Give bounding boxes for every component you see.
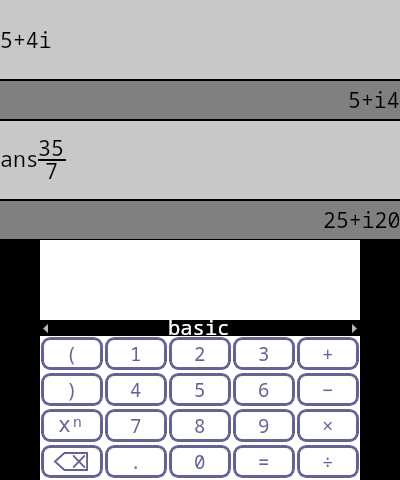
other: Previous keypad: [43, 324, 48, 333]
button[interactable]: ans: [0, 121, 400, 199]
staticText: ÷: [322, 449, 334, 475]
button[interactable]: (: [41, 337, 103, 370]
button[interactable]: 3: [233, 337, 295, 370]
staticText: ): [66, 377, 78, 403]
staticText: ×: [322, 413, 334, 439]
staticText: −: [322, 377, 334, 403]
button[interactable]: 25+i20: [0, 201, 400, 239]
button[interactable]: x: [41, 409, 103, 442]
button[interactable]: .: [105, 445, 167, 478]
staticText: =: [258, 449, 270, 475]
staticText: 8: [194, 413, 206, 439]
staticText: (: [66, 341, 78, 367]
staticText: 5+i4: [348, 85, 400, 114]
button[interactable]: 9: [233, 409, 295, 442]
staticText: 3: [258, 341, 270, 367]
staticText: 0: [194, 449, 206, 475]
button[interactable]: 8: [169, 409, 231, 442]
staticText: 7: [45, 156, 58, 185]
staticText: 6: [258, 377, 270, 403]
button[interactable]: 5+i4: [0, 81, 400, 119]
staticText: 1: [130, 341, 142, 367]
staticText: 9: [258, 413, 270, 439]
button[interactable]: ÷: [297, 445, 359, 478]
staticText: 5: [194, 377, 206, 403]
button[interactable]: 7: [105, 409, 167, 442]
button[interactable]: Backspace: [41, 445, 103, 478]
other: Backspace: [54, 452, 88, 471]
staticText: 35: [38, 133, 64, 162]
staticText: 2: [194, 341, 206, 367]
staticText: n: [73, 411, 82, 431]
staticText: 4: [130, 377, 142, 403]
button[interactable]: 1: [105, 337, 167, 370]
button[interactable]: 2: [169, 337, 231, 370]
button[interactable]: 5+4i: [0, 0, 400, 79]
button[interactable]: 6: [233, 373, 295, 406]
staticText: x: [58, 409, 71, 435]
button[interactable]: 4: [105, 373, 167, 406]
staticText: 5+4i: [0, 25, 52, 54]
staticText: ans: [0, 144, 39, 173]
button[interactable]: 5: [169, 373, 231, 406]
button[interactable]: −: [297, 373, 359, 406]
button[interactable]: =: [233, 445, 295, 478]
staticText: +: [322, 341, 334, 367]
staticText: 7: [130, 413, 142, 439]
staticText: 25+i20: [323, 205, 400, 234]
button[interactable]: +: [297, 337, 359, 370]
other: Next keypad: [352, 324, 357, 333]
button[interactable]: ×: [297, 409, 359, 442]
button[interactable]: ): [41, 373, 103, 406]
staticText: basic: [168, 313, 230, 341]
button[interactable]: 0: [169, 445, 231, 478]
staticText: .: [130, 449, 142, 475]
